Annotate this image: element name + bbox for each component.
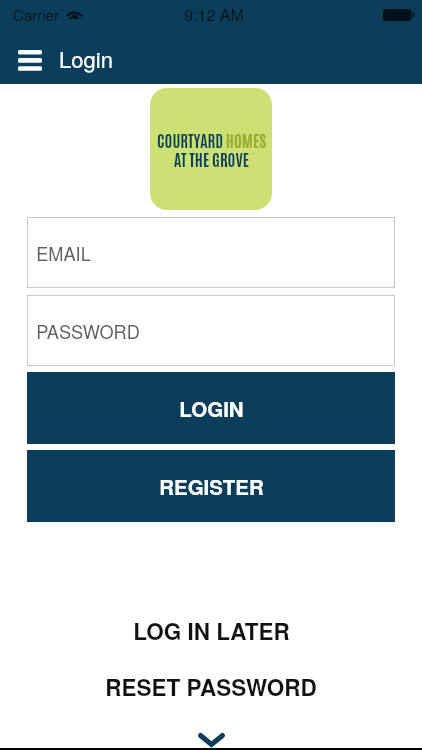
staticText: RESET PASSWORD	[105, 671, 317, 703]
button[interactable]: RESET PASSWORD	[0, 659, 422, 715]
button[interactable]: LOGIN	[27, 372, 395, 444]
button[interactable]: Menu	[6, 35, 54, 83]
staticText: Login	[59, 43, 113, 75]
staticText: EMAIL	[36, 240, 91, 266]
staticText: LOG IN LATER	[133, 615, 290, 647]
staticText: 9:12 AM	[184, 3, 244, 26]
staticText: LOGIN	[179, 394, 244, 423]
button[interactable]: EMAIL	[27, 217, 395, 288]
button[interactable]: LOG IN LATER	[0, 603, 422, 659]
staticText: PASSWORD	[36, 318, 140, 344]
button[interactable]: Scroll down	[0, 715, 422, 750]
button[interactable]: REGISTER	[27, 450, 395, 522]
staticText: REGISTER	[159, 472, 264, 501]
staticText: AT THE GROVE	[174, 149, 249, 170]
staticText: Carrier	[13, 4, 59, 25]
button[interactable]: PASSWORD	[27, 295, 395, 366]
staticText: COURTYARD HOMES	[157, 130, 266, 151]
